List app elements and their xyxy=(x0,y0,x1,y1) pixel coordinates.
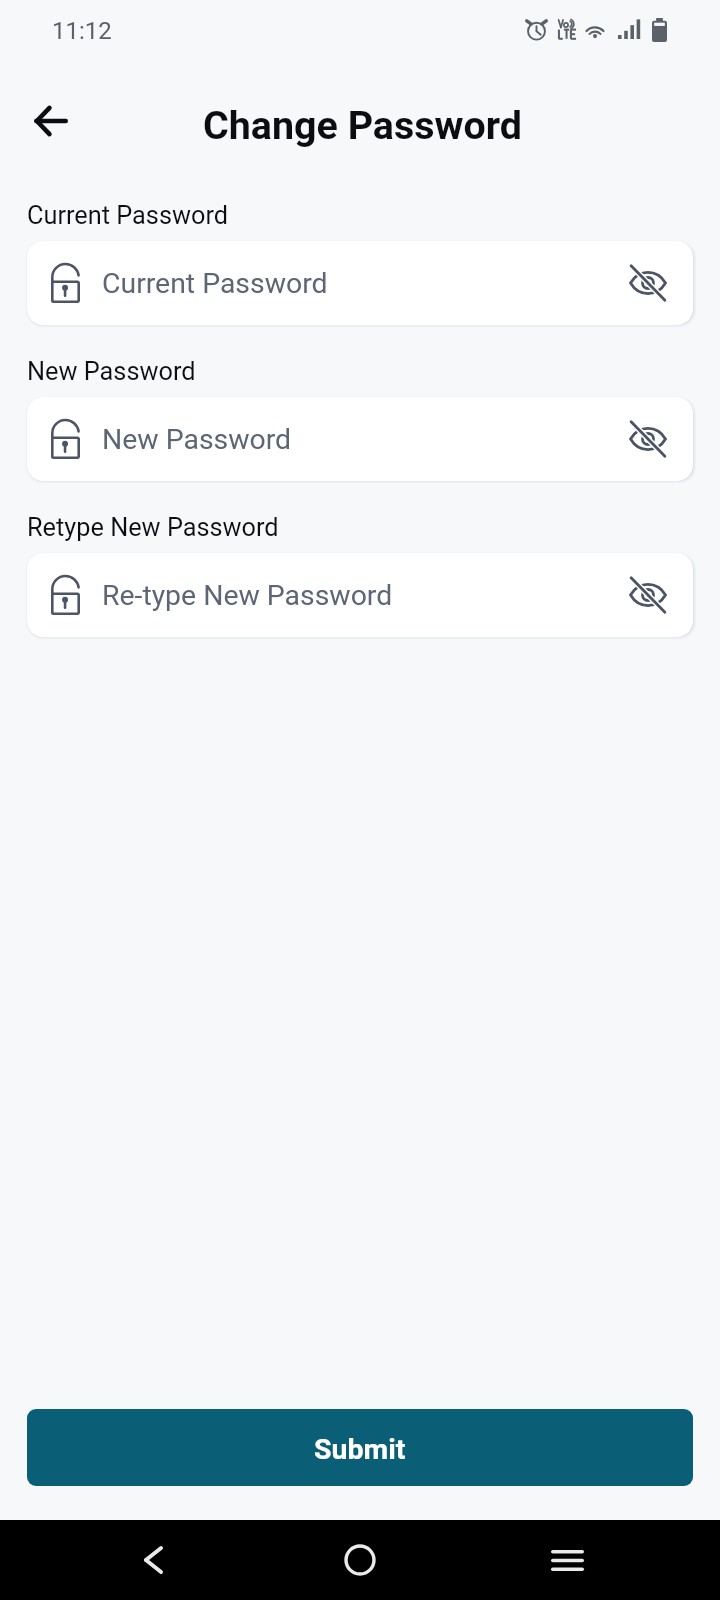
staticText: Change Password xyxy=(203,102,522,148)
button[interactable]: Back xyxy=(121,1528,185,1592)
button[interactable]: Current Password xyxy=(27,241,693,325)
staticText: Retype New Password xyxy=(27,513,279,543)
button[interactable]: Back xyxy=(18,92,84,158)
button[interactable]: Re-type New Password xyxy=(27,553,693,637)
staticText: Current Password xyxy=(27,201,228,231)
staticText: New Password xyxy=(27,357,196,387)
staticText: Re-type New Password xyxy=(102,579,393,612)
button[interactable]: Show password xyxy=(623,258,673,308)
button[interactable]: Home xyxy=(328,1528,392,1592)
button[interactable]: Show password xyxy=(623,414,673,464)
staticText: Submit xyxy=(314,1433,406,1466)
button[interactable]: Show password xyxy=(623,570,673,620)
button[interactable]: Submit xyxy=(27,1409,693,1486)
staticText: Current Password xyxy=(102,267,328,300)
button[interactable]: New Password xyxy=(27,397,693,481)
staticText: 11:12 xyxy=(52,17,112,45)
staticText: New Password xyxy=(102,423,292,456)
button[interactable]: Recent apps xyxy=(535,1528,599,1592)
